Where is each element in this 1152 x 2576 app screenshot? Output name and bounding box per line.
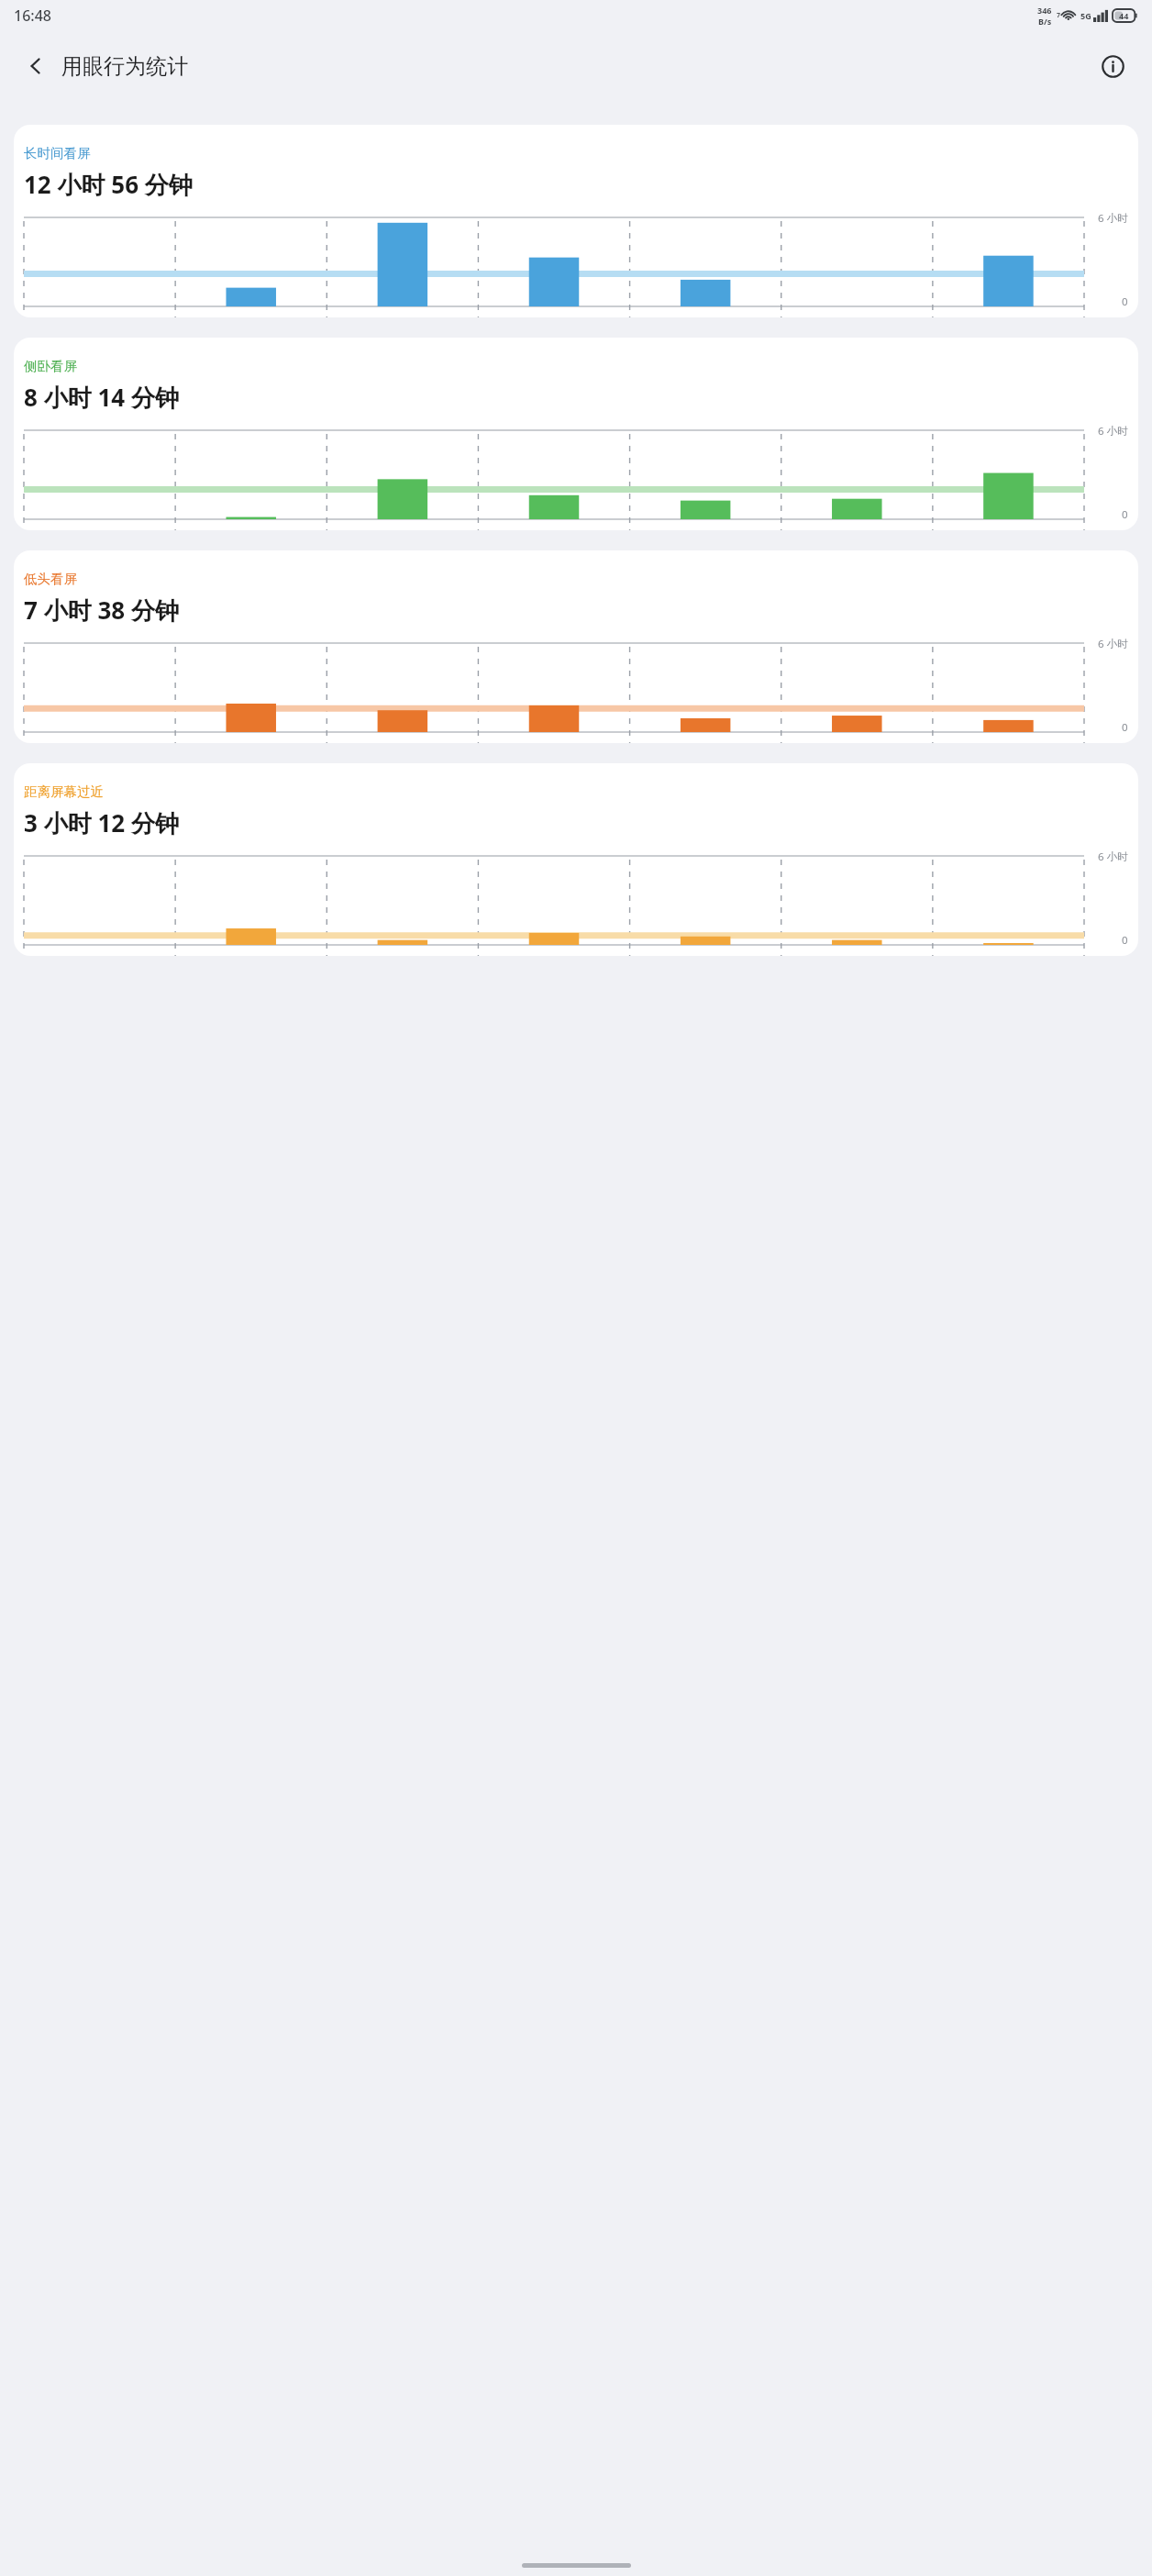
button[interactable]: 侧卧看屏	[14, 338, 1138, 530]
staticText: 6 小时	[1098, 211, 1128, 226]
staticText: 侧卧看屏	[24, 358, 77, 374]
button[interactable]: 长时间看屏	[14, 125, 1138, 317]
staticText: 用眼行为统计	[61, 53, 188, 80]
staticText: 距离屏幕过近	[24, 783, 104, 800]
staticText: 7	[1057, 11, 1061, 20]
staticText: 0	[1122, 294, 1128, 309]
staticText: 346	[1037, 5, 1052, 16]
staticText: 7 小时 38 分钟	[24, 594, 179, 627]
staticText: 低头看屏	[24, 571, 77, 587]
staticText: 6 小时	[1098, 424, 1128, 439]
staticText: 44	[1119, 10, 1129, 21]
staticText: 16:48	[14, 6, 51, 26]
staticText: 0	[1122, 720, 1128, 735]
staticText: 长时间看屏	[24, 145, 91, 161]
staticText: 8 小时 14 分钟	[24, 381, 179, 414]
staticText: 0	[1122, 507, 1128, 522]
staticText: 0	[1122, 933, 1128, 948]
staticText: 3 小时 12 分钟	[24, 806, 179, 839]
button[interactable]: 说明	[1093, 47, 1132, 85]
button[interactable]: 距离屏幕过近	[14, 763, 1138, 956]
button[interactable]: 返回	[20, 50, 188, 82]
staticText: 12 小时 56 分钟	[24, 168, 193, 201]
staticText: B/s	[1038, 16, 1052, 27]
other: 返回	[20, 50, 51, 82]
button[interactable]: 低头看屏	[14, 550, 1138, 743]
staticText: 6 小时	[1098, 849, 1128, 864]
staticText: 6 小时	[1098, 637, 1128, 651]
staticText: 5G	[1080, 10, 1091, 21]
